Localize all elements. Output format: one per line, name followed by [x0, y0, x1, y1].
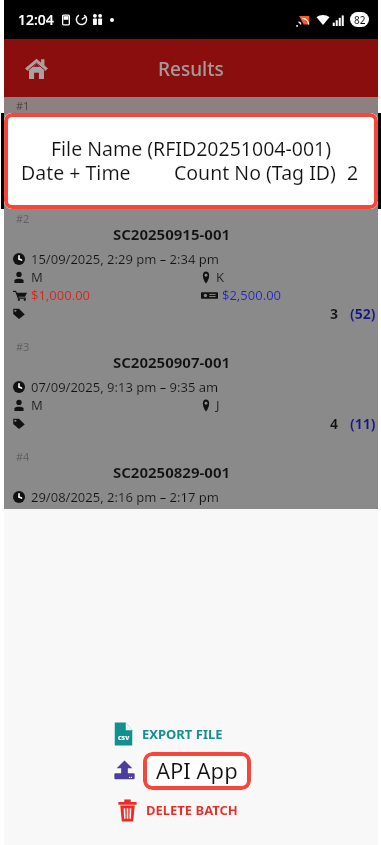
staticText: #4 — [16, 449, 30, 462]
staticText: Date + Time — [21, 159, 131, 186]
staticText: (11) — [350, 414, 376, 432]
button[interactable]: #2 — [4, 211, 378, 339]
staticText: File Name (RFID20251004-001) — [4, 135, 378, 162]
staticText: M — [31, 396, 43, 414]
staticText: Results — [158, 56, 224, 82]
staticText: DELETE BATCH — [146, 801, 238, 819]
button[interactable]: DELETE BATCH — [118, 798, 238, 822]
staticText: 82 — [354, 13, 366, 27]
staticText: $2,500.00 — [222, 286, 282, 304]
staticText: K — [216, 268, 225, 286]
staticText: SC20250829-001 — [4, 462, 339, 479]
staticText: 07/09/2025, 9:13 pm – 9:35 am — [31, 378, 219, 396]
button[interactable]: API App — [113, 751, 251, 790]
staticText: Count No (Tag ID) — [174, 159, 336, 186]
staticText: #1 — [16, 98, 30, 113]
staticText: API App — [156, 755, 238, 785]
staticText: 3 — [330, 304, 339, 322]
staticText: csv — [118, 733, 130, 743]
staticText: 29/08/2025, 2:16 pm – 2:17 pm — [31, 488, 219, 506]
staticText: EXPORT FILE — [142, 725, 223, 743]
staticText: 15/09/2025, 2:29 pm – 2:34 pm — [31, 250, 219, 268]
staticText: J — [216, 396, 220, 414]
staticText: #3 — [16, 339, 30, 352]
staticText: $1,000.00 — [31, 286, 91, 304]
staticText: #2 — [16, 211, 30, 224]
staticText: M — [31, 268, 43, 286]
button[interactable]: File Name (RFID20251004-001) — [4, 113, 378, 209]
staticText: 2 — [347, 159, 359, 186]
staticText: 4 — [330, 414, 339, 432]
staticText: SC20250915-001 — [4, 224, 339, 241]
button[interactable]: #3 — [4, 339, 378, 449]
button[interactable]: Home — [25, 58, 48, 79]
staticText: (52) — [350, 304, 376, 322]
staticText: 12:04 — [18, 10, 54, 29]
button[interactable]: #4 — [4, 449, 378, 509]
button[interactable]: csv — [114, 721, 223, 746]
staticText: SC20250907-001 — [4, 352, 339, 369]
